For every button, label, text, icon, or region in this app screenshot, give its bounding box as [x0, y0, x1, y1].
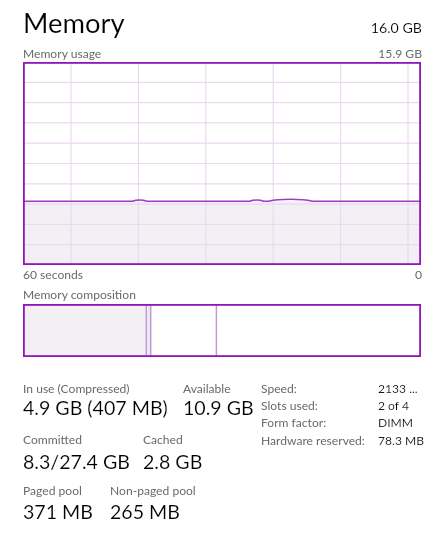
staticText: Paged pool [23, 483, 82, 498]
staticText: 0 [280, 267, 422, 282]
staticText: Committed [23, 432, 82, 447]
staticText: Memory [23, 6, 125, 39]
staticText: 4.9 GB (407 MB) [23, 396, 168, 420]
staticText: 8.3/27.4 GB [23, 450, 130, 474]
staticText: Form factor: [261, 415, 327, 430]
staticText: 15.9 GB [280, 46, 422, 61]
staticText: 10.9 GB [183, 396, 254, 420]
staticText: 16.0 GB [280, 19, 422, 36]
other: Memory usage graph [23, 62, 421, 265]
staticText: Slots used: [261, 398, 318, 413]
staticText: Available [183, 381, 231, 396]
other: Memory composition [23, 304, 421, 357]
staticText: Memory composition [23, 287, 136, 302]
staticText: DIMM [378, 415, 414, 430]
staticText: 2.8 GB [143, 450, 203, 474]
staticText: In use (Compressed) [23, 381, 130, 396]
staticText: 2133 ... [378, 381, 418, 396]
staticText: Speed: [261, 381, 297, 396]
staticText: Cached [143, 432, 183, 447]
staticText: Hardware reserved: [261, 433, 365, 448]
staticText: 2 of 4 [378, 398, 409, 413]
staticText: Non-paged pool [110, 483, 196, 498]
staticText: 78.3 MB [378, 433, 425, 448]
staticText: 60 seconds [23, 267, 84, 282]
staticText: 371 MB [23, 500, 93, 524]
staticText: Memory usage [23, 46, 102, 61]
staticText: 265 MB [110, 500, 180, 524]
